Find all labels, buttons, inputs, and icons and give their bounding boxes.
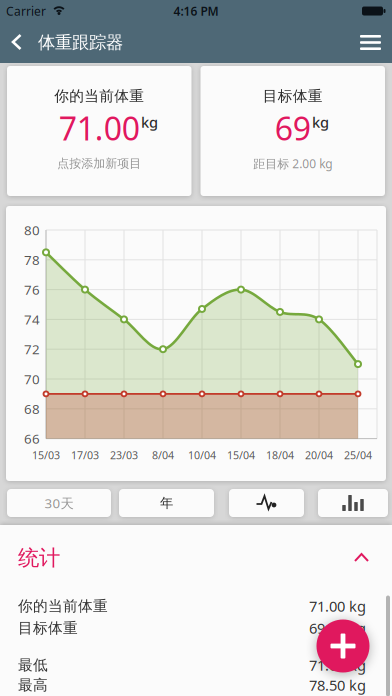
staticText: 最高: [18, 676, 48, 694]
staticText: 78: [24, 251, 40, 269]
staticText: 70: [24, 370, 40, 388]
staticText: 距目标 2.00 kg: [253, 155, 332, 171]
button[interactable]: Back: [0, 22, 25, 62]
staticText: 17/03: [71, 448, 99, 462]
staticText: 23/03: [110, 448, 138, 462]
staticText: 71.00 kg: [309, 596, 366, 616]
staticText: 18/04: [266, 448, 294, 462]
staticText: 10/04: [188, 448, 216, 462]
button[interactable]: 你的当前体重: [7, 66, 191, 196]
button[interactable]: 目标体重: [200, 66, 385, 196]
staticText: 71.00: [59, 107, 140, 149]
staticText: 你的当前体重: [18, 597, 108, 615]
staticText: kg: [141, 112, 158, 132]
staticText: 目标体重: [263, 87, 323, 105]
staticText: 80: [24, 221, 40, 239]
staticText: kg: [312, 112, 329, 132]
button[interactable]: 年: [119, 489, 214, 517]
staticText: 66: [24, 430, 40, 447]
staticText: 69: [275, 107, 311, 149]
staticText: 68: [24, 400, 40, 418]
staticText: 78.50 kg: [309, 675, 366, 695]
button[interactable]: Menu: [360, 25, 392, 60]
staticText: 8/04: [152, 448, 174, 462]
staticText: 目标体重: [18, 619, 78, 637]
staticText: 71.00 kg: [309, 655, 366, 675]
button[interactable]: Add entry: [316, 619, 369, 672]
staticText: 点按添加新项目: [57, 156, 141, 171]
staticText: 25/04: [344, 448, 372, 462]
staticText: 20/04: [305, 448, 333, 462]
staticText: 4:16 PM: [173, 3, 218, 19]
staticText: 统计: [18, 545, 60, 571]
staticText: 30天: [44, 494, 73, 512]
staticText: 74: [24, 310, 40, 328]
staticText: 体重跟踪器: [38, 32, 123, 53]
staticText: 15/03: [32, 448, 60, 462]
button[interactable]: Bar chart: [318, 489, 388, 517]
staticText: 76: [24, 281, 40, 298]
button[interactable]: 统计: [0, 540, 392, 576]
staticText: 72: [24, 340, 40, 358]
staticText: 年: [160, 495, 173, 511]
staticText: 15/04: [227, 448, 255, 462]
staticText: 最低: [18, 656, 48, 674]
button[interactable]: 30天: [7, 489, 111, 517]
staticText: Carrier: [6, 3, 46, 19]
staticText: 69.00 kg: [309, 618, 366, 638]
button[interactable]: Line chart: [229, 489, 304, 517]
staticText: 你的当前体重: [54, 87, 144, 105]
